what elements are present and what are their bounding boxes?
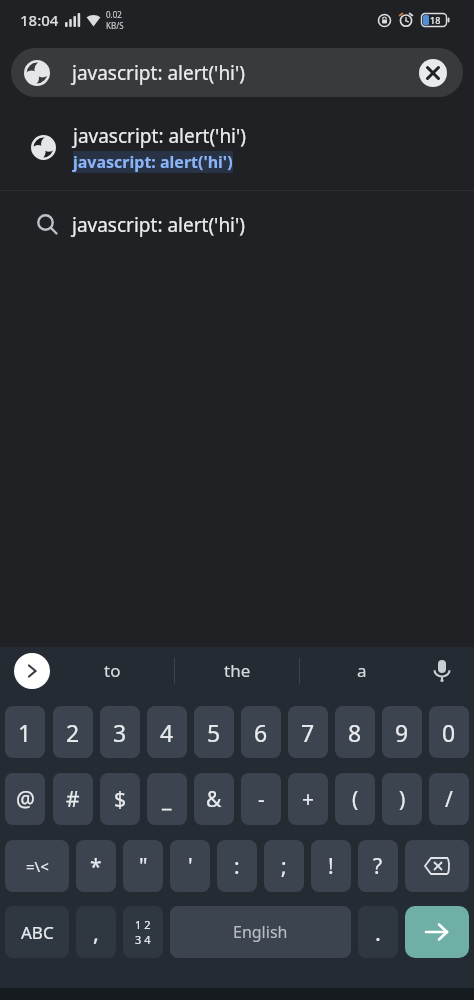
staticText: - bbox=[258, 785, 265, 814]
button[interactable]: to bbox=[50, 647, 174, 694]
staticText: 7 bbox=[301, 717, 315, 748]
button[interactable]: $ bbox=[100, 773, 140, 825]
button[interactable]: 1 bbox=[5, 706, 45, 758]
button[interactable]: ABC bbox=[5, 906, 69, 958]
staticText: ) bbox=[399, 785, 406, 814]
button[interactable]: ' bbox=[170, 840, 210, 892]
staticText: @ bbox=[16, 785, 35, 814]
button[interactable]: 9 bbox=[382, 706, 422, 758]
staticText: # bbox=[66, 785, 80, 814]
staticText: =\< bbox=[26, 856, 49, 876]
button[interactable]: a bbox=[300, 647, 424, 694]
button[interactable]: ? bbox=[358, 840, 398, 892]
button[interactable]: javascript: alert('hi') bbox=[0, 105, 474, 190]
staticText: + bbox=[302, 785, 315, 814]
staticText: _ bbox=[162, 785, 172, 814]
staticText: 5 bbox=[207, 717, 221, 748]
staticText: ? bbox=[373, 852, 383, 881]
button[interactable]: 5 bbox=[194, 706, 234, 758]
button[interactable]: 3 bbox=[100, 706, 140, 758]
button[interactable] bbox=[405, 906, 469, 958]
staticText: KB/S bbox=[106, 20, 124, 31]
staticText: ' bbox=[188, 852, 193, 881]
staticText: English bbox=[233, 921, 288, 943]
button[interactable]: ! bbox=[311, 840, 351, 892]
button[interactable]: ; bbox=[264, 840, 304, 892]
staticText: & bbox=[206, 785, 222, 814]
button[interactable] bbox=[405, 840, 469, 892]
button[interactable] bbox=[419, 59, 447, 87]
button[interactable]: the bbox=[175, 647, 299, 694]
staticText: javascript: alert('hi') bbox=[72, 212, 245, 238]
button[interactable] bbox=[14, 653, 50, 689]
button[interactable]: 8 bbox=[335, 706, 375, 758]
button[interactable]: =\< bbox=[5, 840, 69, 892]
staticText: 8 bbox=[348, 717, 362, 748]
staticText: 0 bbox=[442, 717, 456, 748]
button[interactable]: , bbox=[76, 906, 116, 958]
staticText: 1 2 bbox=[135, 917, 151, 932]
staticText: * bbox=[90, 852, 102, 881]
button[interactable]: * bbox=[76, 840, 116, 892]
button[interactable]: English bbox=[170, 906, 351, 958]
button[interactable]: . bbox=[358, 906, 398, 958]
staticText: ( bbox=[352, 785, 359, 814]
button[interactable]: / bbox=[429, 773, 469, 825]
button[interactable]: + bbox=[288, 773, 328, 825]
button[interactable] bbox=[424, 653, 460, 689]
staticText: 0.02 bbox=[106, 9, 122, 20]
button[interactable]: _ bbox=[147, 773, 187, 825]
button[interactable]: 6 bbox=[241, 706, 281, 758]
staticText: 2 bbox=[66, 717, 80, 748]
staticText: 1 bbox=[18, 717, 32, 748]
button[interactable]: javascript: alert('hi') bbox=[0, 191, 474, 258]
staticText: 3 4 bbox=[135, 932, 151, 947]
staticText: javascript: alert('hi') bbox=[73, 123, 246, 149]
staticText: 4 bbox=[160, 717, 174, 748]
staticText: the bbox=[224, 659, 251, 682]
button[interactable]: 4 bbox=[147, 706, 187, 758]
staticText: 18:04 bbox=[20, 10, 59, 30]
button[interactable]: # bbox=[53, 773, 93, 825]
staticText: 6 bbox=[254, 717, 268, 748]
button[interactable]: : bbox=[217, 840, 257, 892]
staticText: 18 bbox=[430, 14, 441, 26]
button[interactable]: 0 bbox=[429, 706, 469, 758]
staticText: 9 bbox=[395, 717, 409, 748]
staticText: ; bbox=[281, 852, 287, 881]
staticText: $ bbox=[114, 785, 127, 814]
staticText: javascript: alert('hi') bbox=[72, 60, 245, 86]
staticText: : bbox=[234, 852, 240, 881]
button[interactable]: & bbox=[194, 773, 234, 825]
button[interactable]: - bbox=[241, 773, 281, 825]
staticText: " bbox=[139, 852, 148, 881]
button[interactable]: " bbox=[123, 840, 163, 892]
staticText: ABC bbox=[21, 921, 54, 944]
staticText: ! bbox=[328, 852, 334, 881]
button[interactable]: @ bbox=[5, 773, 45, 825]
button[interactable]: ) bbox=[382, 773, 422, 825]
staticText: a bbox=[357, 659, 367, 682]
staticText: 3 bbox=[113, 717, 127, 748]
button[interactable]: ( bbox=[335, 773, 375, 825]
staticText: , bbox=[93, 917, 99, 947]
button[interactable]: 2 bbox=[53, 706, 93, 758]
staticText: to bbox=[104, 659, 121, 682]
button[interactable]: 7 bbox=[288, 706, 328, 758]
staticText: javascript: alert('hi') bbox=[73, 151, 233, 173]
staticText: . bbox=[375, 917, 381, 947]
staticText: / bbox=[445, 785, 453, 814]
button[interactable]: 1 2 bbox=[123, 906, 163, 958]
button[interactable]: javascript: alert('hi') bbox=[11, 48, 463, 97]
